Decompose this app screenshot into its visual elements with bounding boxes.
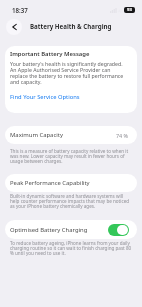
staticText: Peak Performance Capability bbox=[10, 179, 132, 187]
staticText: Battery Health & Charging bbox=[30, 22, 112, 30]
staticText: 74 % bbox=[116, 132, 129, 139]
button[interactable]: Peak Performance Capability bbox=[5, 174, 137, 192]
button[interactable]: Find Your Service Options bbox=[10, 93, 80, 101]
staticText: To reduce battery ageing, iPhone learns … bbox=[10, 240, 132, 256]
staticText: 18:37 bbox=[12, 6, 28, 14]
button[interactable]: Optimised Battery Charging bbox=[5, 220, 137, 239]
staticText: Built-in dynamic software and hardware s… bbox=[10, 193, 132, 209]
staticText: Find Your Service Options bbox=[10, 93, 80, 101]
staticText: Maximum Capacity bbox=[10, 131, 116, 139]
button[interactable]: Optimised Battery Charging toggle bbox=[108, 224, 129, 236]
staticText: Your battery's health is significantly d… bbox=[10, 60, 128, 85]
staticText: Important Battery Message bbox=[10, 50, 90, 58]
button[interactable]: Back bbox=[6, 19, 22, 35]
staticText: Optimised Battery Charging bbox=[10, 226, 108, 234]
staticText: 93 bbox=[127, 7, 132, 13]
staticText: This is a measure of battery capacity re… bbox=[10, 148, 132, 164]
button[interactable]: Maximum Capacity bbox=[5, 126, 137, 144]
